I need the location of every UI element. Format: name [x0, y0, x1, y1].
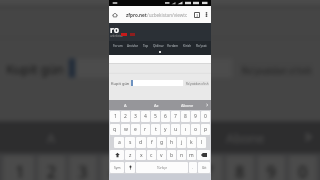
- button[interactable]: 2: [121, 111, 130, 122]
- button[interactable]: b: [167, 150, 176, 160]
- button[interactable]: 8: [226, 156, 254, 180]
- button[interactable]: Voice input: [125, 162, 135, 173]
- button[interactable]: Ro'yxatdan o'tish: [238, 62, 314, 77]
- staticText: x: [140, 152, 143, 159]
- staticText: 0: [298, 162, 308, 180]
- button[interactable]: ı: [181, 124, 190, 135]
- button[interactable]: Backspace: [197, 150, 210, 160]
- button[interactable]: 0: [289, 156, 317, 180]
- button[interactable]: k: [187, 137, 196, 148]
- button[interactable]: 2: [37, 156, 66, 180]
- button[interactable]: 9: [191, 111, 200, 122]
- staticText: j: [181, 139, 183, 146]
- staticText: l: [201, 139, 203, 146]
- staticText: v: [160, 152, 163, 159]
- button[interactable]: Türkçe: [136, 162, 188, 173]
- button[interactable]: Switch tabs: [192, 6, 201, 23]
- button[interactable]: A: [109, 100, 141, 110]
- staticText: t: [155, 126, 157, 133]
- button[interactable]: u: [171, 124, 180, 135]
- button[interactable]: c: [147, 150, 156, 160]
- button[interactable]: Sym: [110, 162, 124, 173]
- button[interactable]: 0: [201, 111, 210, 122]
- button[interactable]: g: [157, 137, 166, 148]
- button[interactable]: x: [136, 150, 146, 160]
- button[interactable]: o: [191, 124, 200, 135]
- button[interactable]: Ro'yxatdan o'tish: [185, 81, 209, 86]
- staticText: m: [189, 152, 194, 159]
- button[interactable]: l: [197, 137, 206, 148]
- button[interactable]: Home: [109, 6, 120, 23]
- button[interactable]: m: [187, 150, 196, 160]
- button[interactable]: n: [177, 150, 186, 160]
- staticText: p: [204, 126, 208, 133]
- button[interactable]: Git: [198, 162, 210, 173]
- button[interactable]: .: [189, 162, 197, 173]
- button[interactable]: 1: [3, 156, 34, 180]
- button[interactable]: q: [110, 124, 120, 135]
- staticText: Az: [141, 131, 157, 146]
- button[interactable]: j: [177, 137, 186, 148]
- button[interactable]: Abone: [172, 100, 203, 110]
- button[interactable]: 5: [132, 156, 160, 180]
- button[interactable]: 1: [110, 111, 120, 122]
- button[interactable]: [131, 80, 183, 86]
- button[interactable]: 3: [69, 156, 97, 180]
- button[interactable]: 6: [161, 111, 170, 122]
- button[interactable]: More options: [201, 6, 211, 23]
- button[interactable]: Abone: [198, 121, 295, 153]
- button[interactable]: Yordam: [166, 44, 180, 48]
- button[interactable]: 8: [181, 111, 190, 122]
- button[interactable]: Qidiruv: [152, 44, 165, 48]
- button[interactable]: 5: [151, 111, 160, 122]
- button[interactable]: More suggestions: [295, 121, 320, 153]
- staticText: z: [129, 152, 132, 159]
- button[interactable]: Top: [142, 44, 150, 48]
- button[interactable]: a: [114, 137, 124, 148]
- button[interactable]: f: [147, 137, 156, 148]
- button[interactable]: 6: [163, 156, 191, 180]
- button[interactable]: Forum: [112, 44, 124, 48]
- button[interactable]: 4: [100, 156, 129, 180]
- button[interactable]: t: [151, 124, 160, 135]
- button[interactable]: r: [141, 124, 150, 135]
- button[interactable]: s: [125, 137, 135, 148]
- button[interactable]: 7: [171, 111, 180, 122]
- button[interactable]: 4: [141, 111, 150, 122]
- button[interactable]: [69, 59, 232, 77]
- staticText: 4: [110, 162, 119, 180]
- button[interactable]: More suggestions: [203, 100, 211, 110]
- button[interactable]: Ro'yxat: [195, 44, 208, 48]
- button[interactable]: z: [125, 150, 135, 160]
- staticText: Sym: [114, 166, 121, 170]
- staticText: Forum: [113, 44, 123, 48]
- button[interactable]: v: [157, 150, 166, 160]
- staticText: y: [164, 126, 167, 133]
- button[interactable]: 3: [131, 111, 140, 122]
- staticText: k: [190, 139, 193, 146]
- button[interactable]: w: [121, 124, 130, 135]
- staticText: 7: [204, 162, 213, 180]
- staticText: d: [139, 139, 143, 146]
- button[interactable]: h: [167, 137, 176, 148]
- button[interactable]: y: [161, 124, 170, 135]
- button[interactable]: e: [131, 124, 140, 135]
- button[interactable]: Az: [100, 121, 198, 153]
- staticText: 5: [141, 162, 151, 180]
- button[interactable]: d: [136, 137, 146, 148]
- staticText: Az: [154, 103, 159, 108]
- staticText: r: [144, 126, 147, 133]
- button[interactable]: 9: [257, 156, 286, 180]
- button[interactable]: Shift: [110, 150, 124, 160]
- staticText: Ro'yxat: [196, 44, 207, 48]
- button[interactable]: Kirish: [182, 44, 193, 48]
- button[interactable]: p: [201, 124, 210, 135]
- staticText: w: [124, 126, 128, 133]
- staticText: n: [180, 152, 184, 159]
- button[interactable]: Arxivlar: [126, 44, 140, 48]
- button[interactable]: 7: [194, 156, 223, 180]
- button[interactable]: Az: [141, 100, 172, 110]
